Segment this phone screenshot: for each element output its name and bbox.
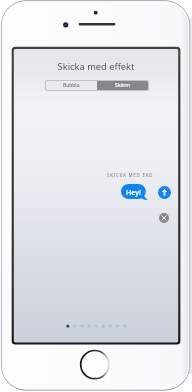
button[interactable]: Skärm — [97, 81, 148, 90]
button[interactable]: Hey! — [121, 184, 148, 199]
staticText: Hey! — [126, 187, 141, 197]
button[interactable]: Send — [158, 186, 171, 199]
staticText: SKICKA MED EKO — [107, 172, 154, 178]
staticText: Bubbla — [63, 82, 80, 89]
staticText: Skärm — [115, 82, 130, 89]
staticText: Skicka med effekt — [14, 60, 178, 73]
button[interactable]: Bubbla — [46, 81, 97, 90]
button[interactable]: Close — [159, 213, 169, 223]
